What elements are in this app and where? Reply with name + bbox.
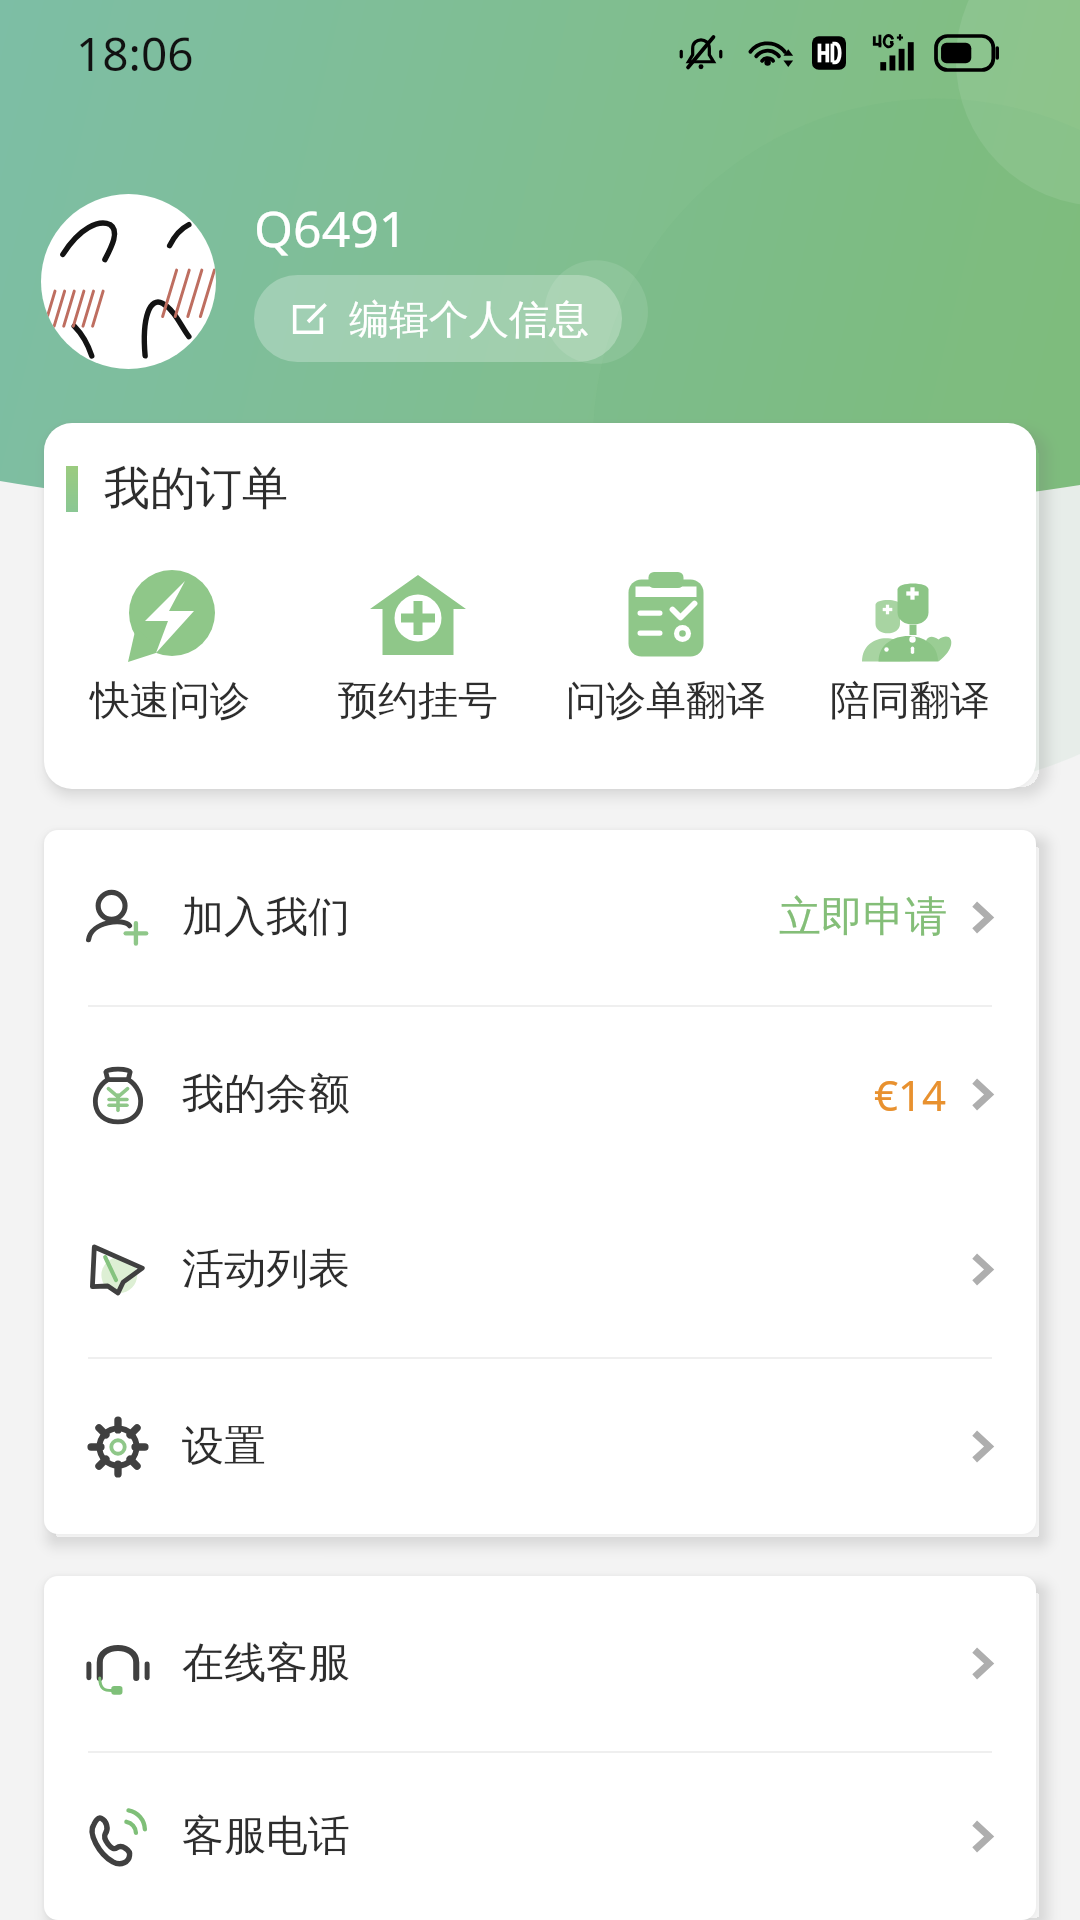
button[interactable]: Avatar xyxy=(41,194,216,369)
staticText: 客服电话 xyxy=(182,1810,350,1863)
staticText: 预约挂号 xyxy=(338,675,498,725)
staticText: 问诊单翻译 xyxy=(566,675,766,725)
staticText: 加入我们 xyxy=(182,891,350,944)
staticText: 18:06 xyxy=(76,22,194,85)
button[interactable]: 我的余额 xyxy=(44,1007,1036,1182)
staticText: Q6491 xyxy=(254,194,408,262)
button[interactable]: 客服电话 xyxy=(44,1753,1036,1920)
button[interactable]: 在线客服 xyxy=(44,1576,1036,1751)
staticText: 在线客服 xyxy=(182,1637,350,1690)
button[interactable]: 活动列表 xyxy=(44,1182,1036,1357)
staticText: 设置 xyxy=(182,1420,266,1473)
button[interactable]: 设置 xyxy=(44,1359,1036,1534)
staticText: 立即申请 xyxy=(779,891,947,944)
staticText: €14 xyxy=(874,1066,947,1123)
button[interactable]: 加入我们 xyxy=(44,830,1036,1005)
staticText: 编辑个人信息 xyxy=(349,294,589,344)
button[interactable]: 预约挂号 xyxy=(294,565,542,725)
staticText: 活动列表 xyxy=(182,1243,350,1296)
button[interactable]: 陪同翻译 xyxy=(790,565,1030,725)
button[interactable]: 编辑个人信息 xyxy=(254,275,622,362)
staticText: 陪同翻译 xyxy=(830,675,990,725)
button[interactable]: 快速问诊 xyxy=(46,565,294,725)
button[interactable]: 问诊单翻译 xyxy=(542,565,790,725)
staticText: 我的订单 xyxy=(104,460,288,518)
staticText: 快速问诊 xyxy=(90,675,250,725)
staticText: 我的余额 xyxy=(182,1068,350,1121)
